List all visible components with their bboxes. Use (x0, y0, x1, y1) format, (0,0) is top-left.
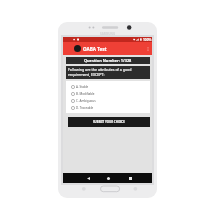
staticText: D. Traceable (76, 106, 94, 110)
staticText: 100% (143, 38, 152, 42)
button[interactable]: B. Modifiable (66, 90, 150, 97)
staticText: B. Modifiable (76, 92, 95, 96)
button[interactable]: SUBMIT YOUR CHOICE (68, 117, 150, 127)
button[interactable]: D. Traceable (66, 104, 150, 111)
button[interactable]: C. Ambiguous (66, 97, 150, 104)
staticText: OABA Test (83, 46, 107, 52)
staticText: C. Ambiguous (76, 99, 96, 103)
staticText: SAMSUNG (100, 32, 116, 36)
button[interactable]: Recents (125, 173, 135, 183)
button[interactable]: Back (83, 173, 93, 183)
staticText: SUBMIT YOUR CHOICE (93, 120, 125, 124)
staticText: Question Number: 1/328 (84, 58, 132, 63)
staticText: Following are the attributes of a good r… (68, 67, 148, 77)
button[interactable]: Home (103, 173, 113, 183)
button[interactable]: More options (144, 42, 151, 55)
staticText: A. Stable (76, 85, 89, 89)
button[interactable]: A. Stable (66, 83, 150, 90)
button[interactable]: OABA Test (63, 42, 152, 55)
